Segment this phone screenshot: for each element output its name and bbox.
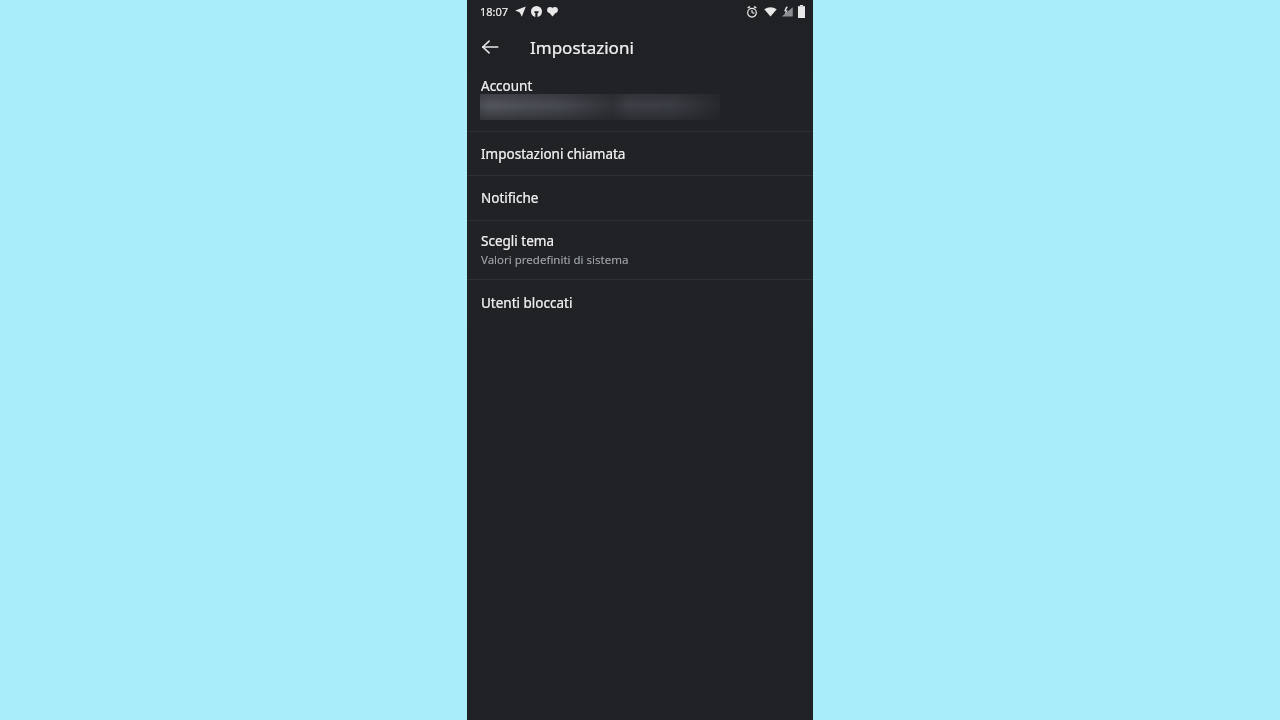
staticText: Scegli tema (481, 232, 554, 250)
staticText: Impostazioni (530, 36, 634, 59)
button[interactable]: Back (478, 35, 502, 59)
staticText: Account (481, 77, 533, 95)
button[interactable]: Impostazioni chiamata (467, 132, 813, 175)
staticText: Utenti bloccati (481, 294, 573, 312)
staticText: Impostazioni chiamata (481, 145, 626, 163)
button[interactable]: Notifiche (467, 176, 813, 220)
staticText: 18:07 (480, 4, 509, 19)
button[interactable]: Account (467, 72, 813, 131)
staticText: Notifiche (481, 189, 539, 207)
staticText: Valori predefiniti di sistema (481, 252, 629, 268)
button[interactable]: Scegli tema (467, 221, 813, 279)
button[interactable]: Utenti bloccati (467, 280, 813, 326)
